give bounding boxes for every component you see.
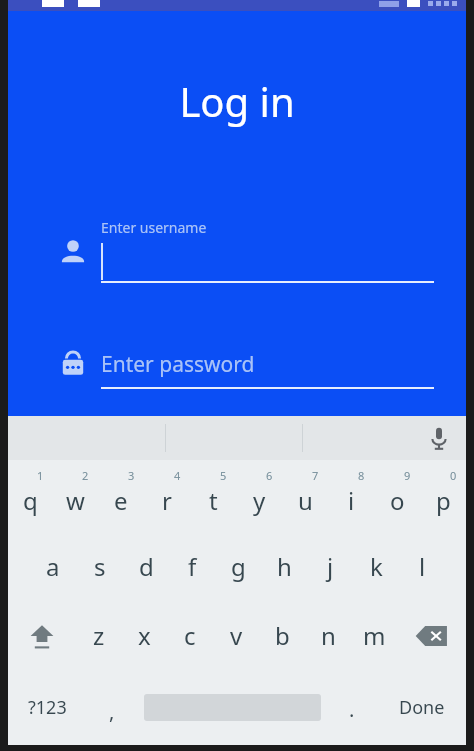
staticText: 2 (82, 468, 89, 483)
staticText: h (277, 550, 292, 583)
button[interactable]: 4 (144, 460, 190, 532)
button[interactable]: 9 (374, 460, 420, 532)
button[interactable]: Backspace (397, 601, 466, 670)
staticText: ?123 (28, 695, 67, 720)
button[interactable]: ?123 (8, 670, 87, 745)
staticText: 7 (312, 468, 319, 483)
button[interactable]: f (169, 532, 215, 601)
button[interactable]: Username (8, 207, 466, 293)
staticText: i (348, 484, 355, 517)
button[interactable]: 0 (420, 460, 466, 532)
staticText: y (253, 484, 266, 517)
button[interactable]: j (307, 532, 353, 601)
button[interactable]: v (213, 601, 259, 670)
button[interactable]: , (87, 670, 137, 745)
button[interactable]: 3 (98, 460, 144, 532)
staticText: o (390, 484, 405, 517)
button[interactable]: z (76, 601, 121, 670)
staticText: n (321, 619, 336, 652)
button[interactable]: g (215, 532, 261, 601)
staticText: 9 (404, 468, 411, 483)
staticText: j (327, 550, 334, 583)
button[interactable]: k (353, 532, 399, 601)
staticText: x (138, 619, 151, 652)
other: Password (58, 349, 88, 379)
staticText: m (363, 619, 386, 652)
staticText: g (231, 550, 246, 583)
staticText: w (66, 484, 85, 517)
button[interactable]: Space (137, 670, 327, 745)
staticText: . (349, 696, 355, 723)
button[interactable]: 7 (282, 460, 328, 532)
button[interactable]: 8 (328, 460, 374, 532)
button[interactable]: 5 (190, 460, 236, 532)
staticText: f (188, 550, 197, 583)
staticText: c (184, 619, 196, 652)
staticText: s (94, 550, 106, 583)
button[interactable]: 2 (53, 460, 98, 532)
button[interactable]: b (259, 601, 305, 670)
button[interactable]: l (399, 532, 445, 601)
button[interactable]: d (123, 532, 169, 601)
staticText: 3 (128, 468, 135, 483)
staticText: v (230, 619, 243, 652)
staticText: z (93, 619, 105, 652)
button[interactable]: Done (377, 670, 466, 745)
staticText: r (162, 484, 172, 517)
button[interactable]: a (29, 532, 76, 601)
staticText: d (139, 550, 154, 583)
staticText: l (419, 550, 426, 583)
staticText: k (370, 550, 383, 583)
staticText: e (114, 484, 128, 517)
staticText: p (436, 484, 451, 517)
staticText: t (209, 484, 218, 517)
staticText: Done (399, 695, 445, 720)
staticText: Enter username (101, 218, 207, 237)
staticText: a (46, 550, 60, 583)
staticText: 0 (450, 468, 457, 483)
staticText: Enter password (101, 350, 255, 379)
button[interactable]: Voice input (424, 423, 454, 453)
button[interactable]: c (167, 601, 213, 670)
staticText: u (298, 484, 313, 517)
button[interactable]: 1 (8, 460, 53, 532)
button[interactable]: n (305, 601, 351, 670)
button[interactable]: Password (8, 341, 466, 405)
button[interactable]: Shift (8, 601, 76, 670)
staticText: b (275, 619, 290, 652)
staticText: 5 (220, 468, 227, 483)
staticText: q (23, 484, 38, 517)
staticText: 8 (358, 468, 365, 483)
button[interactable]: x (121, 601, 167, 670)
button[interactable]: m (351, 601, 397, 670)
staticText: , (109, 698, 115, 725)
button[interactable]: h (261, 532, 307, 601)
button[interactable]: s (76, 532, 123, 601)
staticText: 6 (266, 468, 273, 483)
button[interactable]: 6 (236, 460, 282, 532)
button[interactable]: . (327, 670, 377, 745)
other: Username (58, 237, 88, 267)
staticText: Log in (8, 74, 466, 128)
staticText: 4 (174, 468, 181, 483)
staticText: 1 (37, 468, 44, 483)
